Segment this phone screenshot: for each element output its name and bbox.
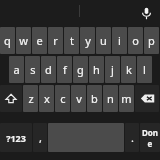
button[interactable]: y [80,27,95,54]
button[interactable]: Shift [0,85,22,112]
button[interactable]: j [105,56,120,83]
staticText: o [132,33,139,48]
staticText: h [93,62,100,77]
staticText: f [63,62,67,77]
button[interactable]: b [87,85,102,112]
button[interactable]: Voice input [138,5,154,21]
staticText: g [77,62,84,77]
button[interactable]: p [144,27,159,54]
staticText: n [107,91,114,106]
staticText: p [148,33,155,48]
staticText: ?123 [6,132,26,144]
button[interactable]: Backspace [135,85,159,112]
button[interactable]: e [32,27,47,54]
staticText: Done [140,127,160,149]
button[interactable]: r [48,27,63,54]
staticText: s [30,62,36,77]
staticText: r [53,33,58,48]
staticText: v [76,91,82,106]
button[interactable]: x [39,85,54,112]
staticText: i [118,33,121,48]
staticText: b [91,91,98,106]
staticText: z [28,91,34,106]
staticText: , [39,130,42,145]
button[interactable]: h [89,56,104,83]
button[interactable]: Done [140,123,160,152]
button[interactable]: z [23,85,38,112]
button[interactable]: n [103,85,118,112]
button[interactable]: , [33,123,47,152]
button[interactable]: c [55,85,70,112]
button[interactable]: t [64,27,79,54]
button[interactable]: k [121,56,136,83]
staticText: l [143,62,146,77]
staticText: q [4,33,11,48]
staticText: m [121,91,132,106]
button[interactable]: a [9,56,24,83]
staticText: k [126,62,132,77]
staticText: j [111,62,114,77]
staticText: x [44,91,50,106]
staticText: y [85,33,91,48]
button[interactable]: m [119,85,134,112]
staticText: w [19,33,28,48]
button[interactable]: i [112,27,127,54]
button[interactable]: u [96,27,111,54]
staticText: . [131,130,134,145]
staticText: e [36,33,43,48]
staticText: u [100,33,107,48]
button[interactable]: q [0,27,15,54]
button[interactable]: . [125,123,139,152]
button[interactable]: ?123 [0,123,32,152]
button[interactable]: g [73,56,88,83]
button[interactable]: f [57,56,72,83]
button[interactable]: w [16,27,31,54]
button[interactable]: Voice input [0,0,160,26]
staticText: c [60,91,66,106]
button[interactable]: l [137,56,152,83]
staticText: d [45,62,52,77]
button[interactable]: s [25,56,40,83]
staticText: a [13,62,20,77]
staticText: t [70,33,74,48]
button[interactable]: o [128,27,143,54]
button[interactable]: v [71,85,86,112]
button[interactable]: d [41,56,56,83]
